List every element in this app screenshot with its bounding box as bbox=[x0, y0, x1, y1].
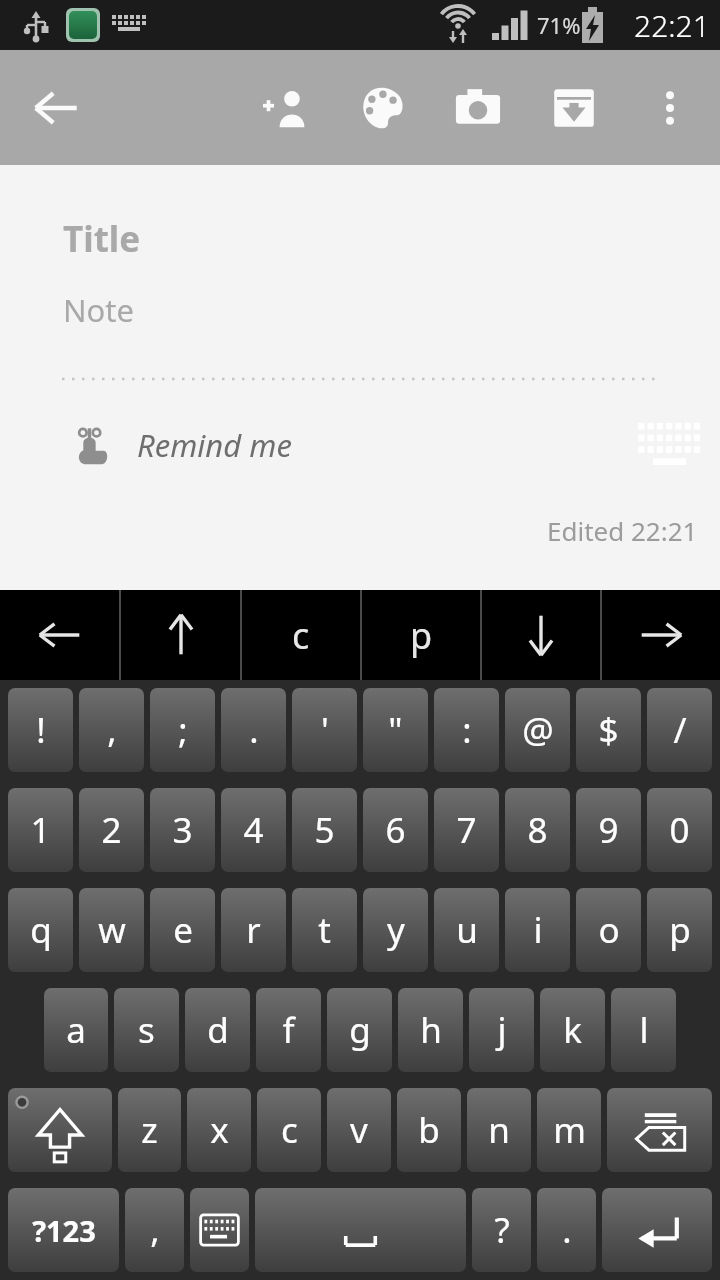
button[interactable]: 6 bbox=[363, 788, 428, 872]
button[interactable]: 9 bbox=[576, 788, 641, 872]
button[interactable]: g bbox=[327, 988, 392, 1072]
staticText: q bbox=[30, 906, 52, 954]
button[interactable]: j bbox=[469, 988, 534, 1072]
staticText: ? bbox=[494, 1206, 510, 1254]
staticText: v bbox=[350, 1106, 368, 1154]
button[interactable]: Title bbox=[63, 215, 141, 263]
button[interactable]: Down bbox=[482, 590, 600, 680]
staticText: y bbox=[387, 906, 405, 954]
button[interactable]: . bbox=[221, 688, 286, 772]
button[interactable]: More options bbox=[622, 50, 718, 165]
button[interactable]: ; bbox=[150, 688, 215, 772]
button[interactable]: Add photo bbox=[430, 50, 526, 165]
button[interactable]: Enter bbox=[602, 1188, 712, 1272]
staticText: Edited 22:21 bbox=[547, 513, 698, 548]
button[interactable]: ? bbox=[472, 1188, 531, 1272]
staticText: u bbox=[456, 906, 478, 954]
button[interactable]: " bbox=[363, 688, 428, 772]
staticText: 9 bbox=[598, 806, 619, 854]
button[interactable]: l bbox=[611, 988, 676, 1072]
staticText: h bbox=[420, 1006, 442, 1054]
staticText: / bbox=[673, 706, 687, 754]
button[interactable]: v bbox=[327, 1088, 391, 1172]
button[interactable]: x bbox=[187, 1088, 251, 1172]
staticText: r bbox=[246, 906, 261, 954]
button[interactable]: c bbox=[242, 590, 360, 680]
button[interactable]: w bbox=[79, 888, 144, 972]
button[interactable]: Back bbox=[14, 50, 98, 165]
button[interactable]: n bbox=[467, 1088, 531, 1172]
staticText: 2 bbox=[101, 806, 122, 854]
button[interactable]: o bbox=[576, 888, 641, 972]
staticText: z bbox=[141, 1106, 158, 1154]
button[interactable]: . bbox=[537, 1188, 596, 1272]
button[interactable]: t bbox=[292, 888, 357, 972]
button[interactable]: Shift bbox=[8, 1088, 112, 1172]
button[interactable]: Up bbox=[121, 590, 240, 680]
button[interactable]: 5 bbox=[292, 788, 357, 872]
button[interactable]: p bbox=[647, 888, 712, 972]
button[interactable]: 3 bbox=[150, 788, 215, 872]
button[interactable]: Space bbox=[255, 1188, 466, 1272]
button[interactable]: / bbox=[647, 688, 712, 772]
button[interactable]: k bbox=[540, 988, 605, 1072]
button[interactable]: m bbox=[537, 1088, 601, 1172]
staticText: p bbox=[410, 611, 433, 660]
button[interactable]: y bbox=[363, 888, 428, 972]
staticText: 3 bbox=[172, 806, 193, 854]
button[interactable]: 4 bbox=[221, 788, 286, 872]
button[interactable]: ' bbox=[292, 688, 357, 772]
button[interactable]: 2 bbox=[79, 788, 144, 872]
button[interactable]: ! bbox=[8, 688, 73, 772]
button[interactable]: Delete bbox=[607, 1088, 712, 1172]
button[interactable]: 8 bbox=[505, 788, 570, 872]
button[interactable]: a bbox=[44, 988, 108, 1072]
button[interactable]: p bbox=[362, 590, 480, 680]
button[interactable]: s bbox=[114, 988, 179, 1072]
button[interactable]: q bbox=[8, 888, 73, 972]
button[interactable]: z bbox=[118, 1088, 181, 1172]
staticText: o bbox=[598, 906, 620, 954]
button[interactable]: : bbox=[434, 688, 499, 772]
button[interactable]: 0 bbox=[647, 788, 712, 872]
button[interactable]: f bbox=[256, 988, 321, 1072]
button[interactable]: 1 bbox=[8, 788, 73, 872]
staticText: 8 bbox=[527, 806, 548, 854]
button[interactable]: d bbox=[185, 988, 250, 1072]
button[interactable]: Add collaborator bbox=[238, 50, 334, 165]
button[interactable]: 7 bbox=[434, 788, 499, 872]
button[interactable]: e bbox=[150, 888, 215, 972]
staticText: . bbox=[249, 706, 259, 754]
staticText: b bbox=[418, 1106, 440, 1154]
button[interactable]: Next bbox=[602, 590, 720, 680]
button[interactable]: b bbox=[397, 1088, 461, 1172]
staticText: ! bbox=[36, 706, 46, 754]
staticText: g bbox=[349, 1006, 371, 1054]
button[interactable]: , bbox=[125, 1188, 184, 1272]
button[interactable]: Change keyboard bbox=[190, 1188, 249, 1272]
button[interactable]: Archive bbox=[526, 50, 622, 165]
staticText: c bbox=[292, 611, 310, 660]
button[interactable]: r bbox=[221, 888, 286, 972]
button[interactable]: $ bbox=[576, 688, 641, 772]
button[interactable]: Change color bbox=[334, 50, 430, 165]
staticText: Remind me bbox=[137, 424, 292, 466]
button[interactable]: Previous bbox=[0, 590, 119, 680]
button[interactable]: c bbox=[257, 1088, 321, 1172]
button[interactable]: u bbox=[434, 888, 499, 972]
staticText: 7 bbox=[456, 806, 477, 854]
staticText: 0 bbox=[669, 806, 690, 854]
staticText: 1 bbox=[30, 806, 51, 854]
button[interactable]: Note bbox=[63, 289, 134, 331]
button[interactable]: i bbox=[505, 888, 570, 972]
staticText: @ bbox=[522, 706, 554, 754]
button[interactable]: Remind me bbox=[0, 405, 720, 485]
button[interactable]: , bbox=[79, 688, 144, 772]
staticText: s bbox=[138, 1006, 155, 1054]
staticText: f bbox=[282, 1006, 295, 1054]
button[interactable]: h bbox=[398, 988, 463, 1072]
button[interactable]: @ bbox=[505, 688, 570, 772]
staticText: l bbox=[639, 1006, 649, 1054]
button[interactable]: ?123 bbox=[8, 1188, 119, 1272]
staticText: 5 bbox=[314, 806, 335, 854]
